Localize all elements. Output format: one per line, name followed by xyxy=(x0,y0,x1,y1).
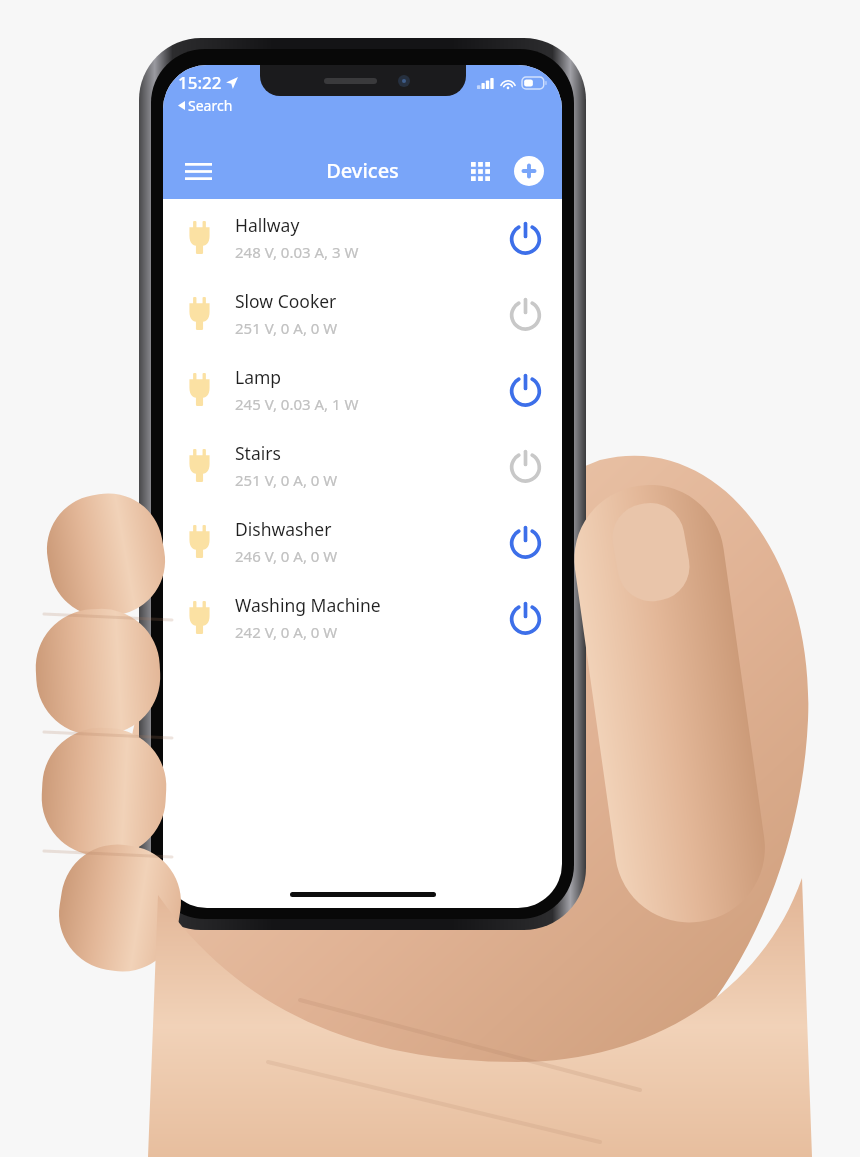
staticText: 15:22 xyxy=(178,71,222,94)
button[interactable]: Grid view xyxy=(460,151,500,191)
staticText: 242 V, 0 A, 0 W xyxy=(235,622,338,642)
button[interactable]: Stairs xyxy=(163,427,562,503)
staticText: Slow Cooker xyxy=(235,289,337,313)
staticText: Hallway xyxy=(235,213,300,237)
staticText: Devices xyxy=(326,157,399,184)
staticText: Stairs xyxy=(235,441,281,465)
staticText: 251 V, 0 A, 0 W xyxy=(235,318,338,338)
staticText: 245 V, 0.03 A, 1 W xyxy=(235,394,359,414)
button[interactable]: Slow Cooker xyxy=(163,275,562,351)
staticText: 248 V, 0.03 A, 3 W xyxy=(235,242,359,262)
staticText: 251 V, 0 A, 0 W xyxy=(235,470,338,490)
button[interactable]: Hallway xyxy=(163,199,562,275)
staticText: Washing Machine xyxy=(235,593,381,617)
button[interactable]: Add device xyxy=(509,151,549,191)
button[interactable]: Menu xyxy=(175,148,221,194)
button[interactable]: Dishwasher xyxy=(163,503,562,579)
button[interactable]: Turn off Lamp xyxy=(488,351,562,427)
staticText: Search xyxy=(188,96,233,115)
button[interactable]: Lamp xyxy=(163,351,562,427)
button[interactable]: Turn on Stairs xyxy=(488,427,562,503)
staticText: 246 V, 0 A, 0 W xyxy=(235,546,338,566)
button[interactable]: Turn off Washing Machine xyxy=(488,579,562,655)
staticText: Dishwasher xyxy=(235,517,332,541)
button[interactable]: Turn off Hallway xyxy=(488,199,562,275)
button[interactable]: Turn on Slow Cooker xyxy=(488,275,562,351)
staticText: Lamp xyxy=(235,365,282,389)
button[interactable]: Turn off Dishwasher xyxy=(488,503,562,579)
button[interactable]: Washing Machine xyxy=(163,579,562,655)
